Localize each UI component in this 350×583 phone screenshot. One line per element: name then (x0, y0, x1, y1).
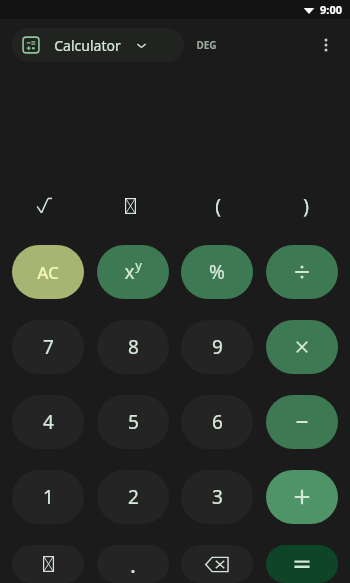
button[interactable]: % (181, 245, 253, 299)
staticText: AC (37, 261, 59, 284)
staticText: DEG (196, 38, 217, 52)
staticText: . (130, 549, 136, 579)
button[interactable]: 2 (97, 470, 169, 524)
button[interactable] (266, 470, 338, 524)
button[interactable] (266, 245, 338, 299)
button[interactable]: 6 (181, 395, 253, 449)
button[interactable] (87, 189, 174, 223)
button[interactable]: DEG (192, 32, 221, 58)
button[interactable]: . (97, 545, 169, 583)
button[interactable]: 9 (181, 320, 253, 374)
staticText: 3 (212, 484, 223, 510)
button[interactable]: 1 (12, 470, 84, 524)
staticText: ) (303, 193, 309, 219)
staticText: 7 (43, 334, 54, 360)
staticText: 9 (212, 334, 223, 360)
staticText: Calculator (54, 36, 121, 55)
button[interactable] (0, 189, 87, 223)
button[interactable]: ) (262, 189, 350, 223)
staticText: 8 (128, 334, 139, 360)
button[interactable]: Backspace (181, 545, 253, 583)
staticText: % (209, 259, 225, 285)
staticText: ( (215, 193, 221, 219)
button[interactable]: AC (12, 245, 84, 299)
button[interactable] (266, 395, 338, 449)
button[interactable]: 8 (97, 320, 169, 374)
button[interactable]: 5 (97, 395, 169, 449)
button[interactable]: 3 (181, 470, 253, 524)
button[interactable] (12, 545, 84, 583)
button[interactable]: Calculator (12, 28, 184, 62)
staticText: 4 (43, 409, 54, 435)
staticText: x (124, 259, 135, 285)
staticText: 2 (128, 484, 139, 510)
button[interactable]: More options (308, 27, 344, 63)
button[interactable]: x (97, 245, 169, 299)
button[interactable]: 7 (12, 320, 84, 374)
button[interactable]: ( (174, 189, 262, 223)
button[interactable] (266, 545, 338, 583)
staticText: 1 (43, 484, 54, 510)
staticText: 5 (128, 409, 139, 435)
button[interactable]: 4 (12, 395, 84, 449)
staticText: 9:00 (320, 2, 342, 17)
button[interactable] (266, 320, 338, 374)
staticText: 6 (212, 409, 223, 435)
staticText: y (135, 256, 142, 274)
